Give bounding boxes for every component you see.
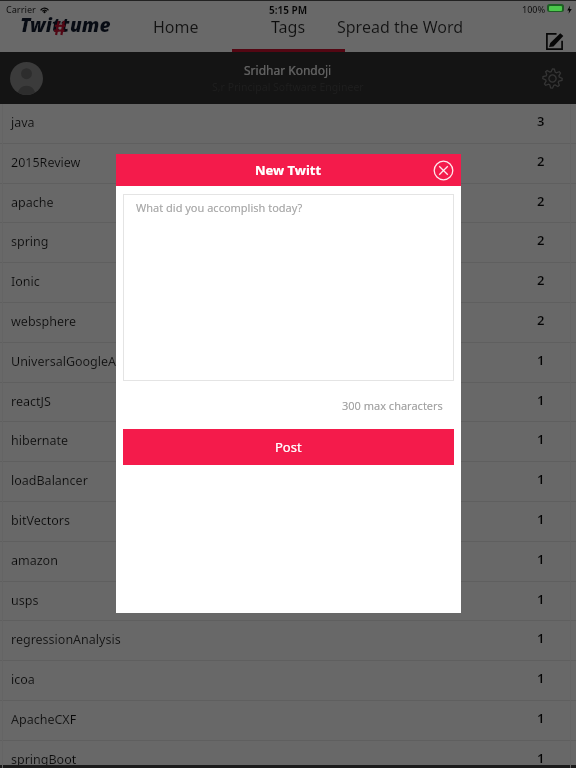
button[interactable]: usps [0, 582, 576, 622]
staticText: apache [11, 194, 54, 211]
staticText: Sridhar Kondoji [244, 62, 332, 78]
staticText: tt [52, 12, 70, 38]
staticText: 2015Review [11, 154, 81, 171]
staticText: bitVectors [11, 512, 70, 529]
staticText: 2 [537, 311, 545, 329]
staticText: Carrier [6, 3, 36, 15]
staticText: spring [11, 233, 49, 250]
staticText: usps [11, 592, 39, 609]
button[interactable]: java [0, 104, 576, 144]
staticText: Home [153, 16, 199, 38]
staticText: 1 [537, 629, 545, 647]
button[interactable]: ApacheCXF [0, 701, 576, 741]
button[interactable]: Close [433, 160, 454, 181]
button[interactable]: UniversalGoogleAnalytics [0, 343, 576, 383]
staticText: 1 [537, 510, 545, 528]
staticText: New Twitt [255, 161, 322, 179]
button[interactable]: loadBalancer [0, 462, 576, 502]
staticText: 5:15 PM [269, 3, 308, 17]
staticText: UniversalGoogleAnalytics [11, 353, 161, 370]
staticText: Spread the Word [337, 16, 464, 38]
staticText: regressionAnalysis [11, 631, 121, 648]
staticText: 1 [537, 550, 545, 568]
staticText: 1 [537, 749, 545, 767]
button[interactable]: regressionAnalysis [0, 621, 576, 661]
staticText: ume [70, 12, 111, 38]
staticText: 3 [537, 112, 545, 130]
button[interactable]: Settings [542, 68, 563, 89]
staticText: 300 max characters [342, 398, 443, 413]
button[interactable]: 2015Review [0, 144, 576, 184]
staticText: loadBalancer [11, 472, 88, 489]
staticText: 2 [537, 192, 545, 210]
staticText: hibernate [11, 432, 69, 449]
staticText: 100% [522, 3, 546, 15]
button[interactable]: reactJS [0, 383, 576, 423]
staticText: reactJS [11, 393, 51, 410]
button[interactable]: apache [0, 184, 576, 224]
staticText: 1 [537, 391, 545, 409]
staticText: Post [275, 438, 302, 456]
button[interactable]: Post [123, 429, 454, 465]
button[interactable]: Home [143, 11, 209, 43]
staticText: 2 [537, 152, 545, 170]
button[interactable]: bitVectors [0, 502, 576, 542]
staticText: 1 [537, 470, 545, 488]
button[interactable]: hibernate [0, 422, 576, 462]
staticText: 2 [537, 231, 545, 249]
staticText: websphere [11, 313, 76, 330]
staticText: Ionic [11, 273, 40, 290]
staticText: springBoot [11, 751, 77, 768]
staticText: 1 [537, 430, 545, 448]
button[interactable]: What did you accomplish today? [123, 194, 454, 381]
staticText: Twi [20, 12, 52, 38]
staticText: ApacheCXF [11, 711, 77, 728]
button[interactable]: springBoot [0, 741, 576, 768]
staticText: Tags [271, 16, 306, 38]
button[interactable]: amazon [0, 542, 576, 582]
button[interactable]: icoa [0, 661, 576, 701]
staticText: 1 [537, 709, 545, 727]
staticText: What did you accomplish today? [136, 200, 303, 215]
staticText: 1 [537, 590, 545, 608]
button[interactable]: Spread the Word [336, 11, 464, 43]
staticText: icoa [11, 671, 35, 688]
button[interactable]: websphere [0, 303, 576, 343]
button[interactable]: spring [0, 223, 576, 263]
staticText: 2 [537, 271, 545, 289]
staticText: amazon [11, 552, 58, 569]
staticText: 1 [537, 669, 545, 687]
button[interactable]: Tags [250, 11, 326, 43]
button[interactable]: Ionic [0, 263, 576, 303]
button[interactable]: New post [546, 33, 563, 50]
staticText: 1 [537, 351, 545, 369]
staticText: java [11, 114, 35, 131]
